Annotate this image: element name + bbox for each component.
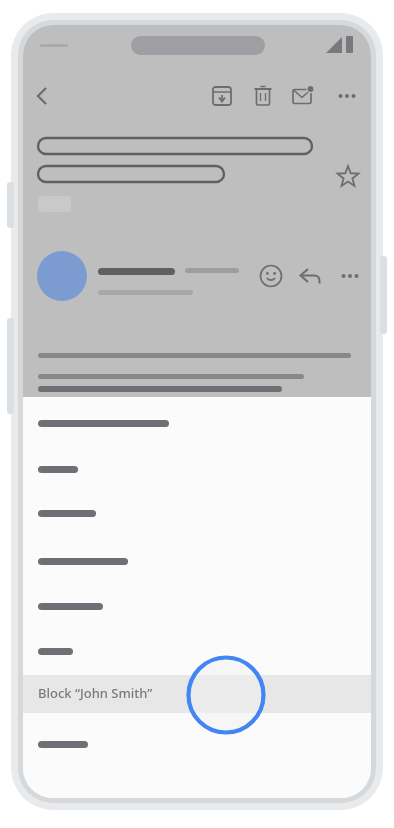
button[interactable]: Reply [298, 264, 324, 290]
button[interactable]: Delete [251, 83, 277, 109]
staticText: Block “John Smith” [38, 684, 153, 702]
button[interactable] [23, 408, 371, 440]
button[interactable] [23, 498, 371, 530]
button[interactable]: Back [31, 83, 57, 109]
button[interactable]: More options [334, 83, 360, 109]
button[interactable] [23, 675, 371, 713]
button[interactable]: Archive [210, 83, 236, 109]
button[interactable]: Star [336, 164, 362, 190]
button[interactable] [23, 546, 371, 578]
button[interactable] [23, 454, 371, 486]
button[interactable]: React [259, 264, 285, 290]
button[interactable]: More message options [338, 264, 364, 290]
button[interactable] [23, 636, 371, 668]
button[interactable]: Mark as unread [290, 83, 316, 109]
button[interactable] [23, 591, 371, 623]
button[interactable] [23, 729, 371, 761]
